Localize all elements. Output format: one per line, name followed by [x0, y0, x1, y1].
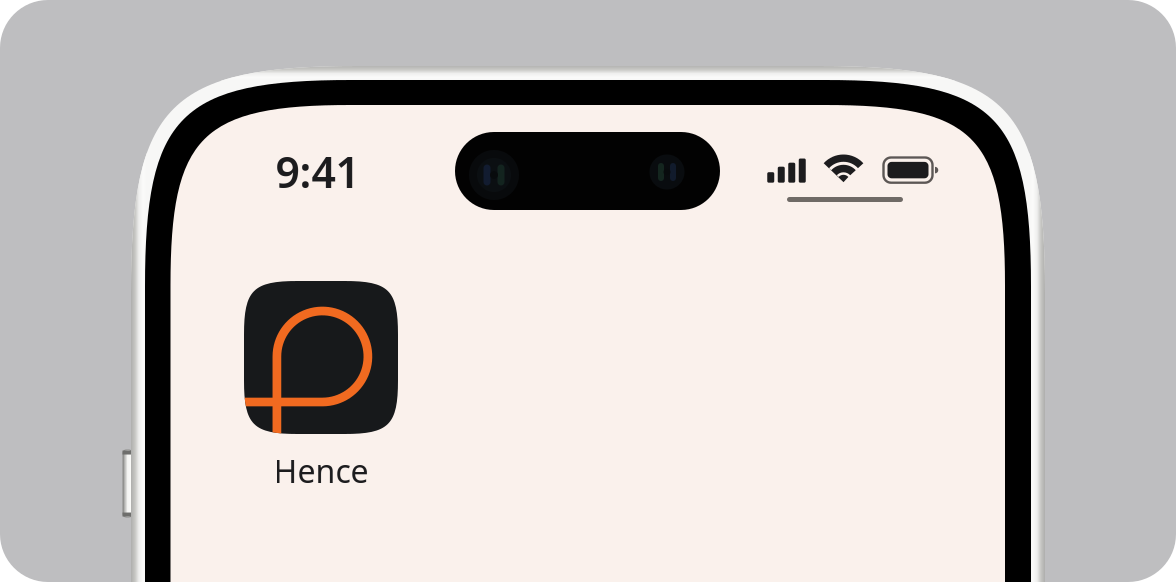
button[interactable]: Hence	[216, 281, 426, 501]
staticText: 9:41	[275, 143, 359, 200]
staticText: Hence	[273, 449, 368, 492]
